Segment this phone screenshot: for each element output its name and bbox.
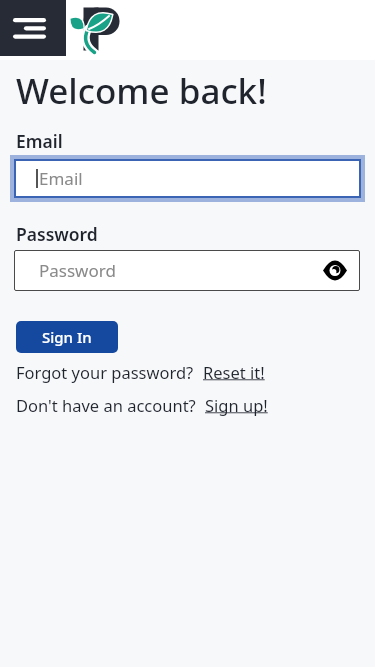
staticText: Password (16, 222, 98, 246)
button[interactable]: Sign In (16, 321, 118, 353)
button[interactable] (66, 0, 126, 60)
staticText: Forgot your password? (16, 361, 194, 383)
staticText: Don't have an account? (16, 394, 196, 416)
staticText: Welcome back! (16, 67, 267, 115)
staticText: Sign In (42, 327, 92, 347)
staticText: Email (39, 167, 83, 190)
button[interactable]: Reset it! (203, 361, 265, 383)
button[interactable]: Sign up! (205, 394, 268, 416)
staticText: Email (16, 129, 63, 153)
button[interactable]: Email (14, 159, 361, 198)
button[interactable] (0, 0, 66, 56)
staticText: Password (39, 259, 116, 282)
button[interactable]: Password (14, 250, 360, 291)
